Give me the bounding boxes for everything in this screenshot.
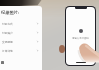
button[interactable]: Back bbox=[1, 61, 4, 64]
staticText: 付款方式 bbox=[2, 22, 13, 25]
staticText: 纪录照片: bbox=[1, 10, 19, 16]
button[interactable]: 交易明细 bbox=[0, 37, 42, 46]
staticText: 请输入支付密码 bbox=[72, 37, 89, 40]
button[interactable]: 付款账户 bbox=[0, 28, 42, 37]
staticText: 付款账户 bbox=[2, 31, 13, 34]
button[interactable]: 订单详情 bbox=[0, 46, 42, 55]
button[interactable]: 付款方式 bbox=[0, 19, 42, 28]
staticText: 订单详情 bbox=[2, 49, 13, 52]
staticText: 交易明细 bbox=[2, 40, 13, 43]
